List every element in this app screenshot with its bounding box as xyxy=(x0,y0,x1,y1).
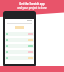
button[interactable] xyxy=(5,38,34,42)
button[interactable] xyxy=(5,56,34,60)
button[interactable] xyxy=(5,44,34,48)
button[interactable] xyxy=(5,50,34,54)
staticText: and your project is done xyxy=(17,6,47,10)
staticText: Get the Scratch app xyxy=(19,2,45,6)
button[interactable] xyxy=(5,32,34,36)
